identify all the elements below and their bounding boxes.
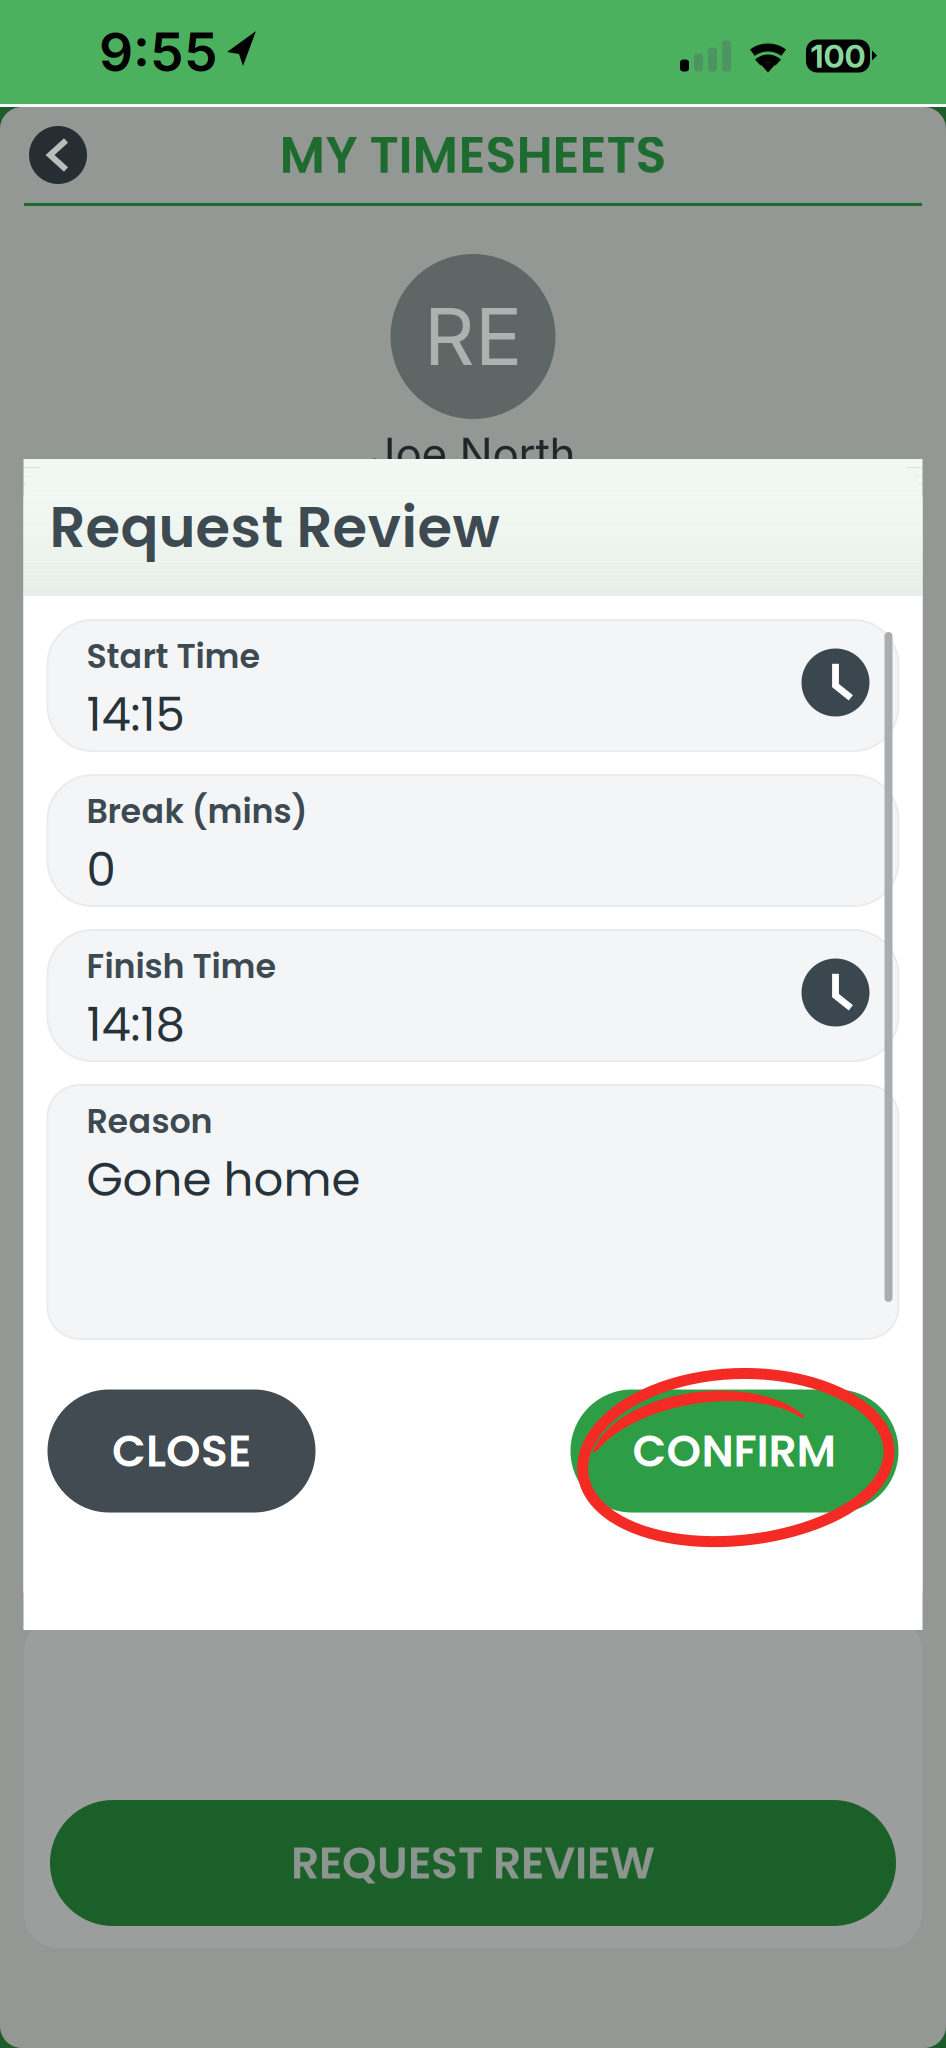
staticText: 0 [86,837,115,902]
button[interactable]: CONFIRM [570,1389,898,1512]
button[interactable]: Pick time [801,958,869,1026]
staticText: Gone home [86,1147,360,1212]
staticText: Finish Time [86,943,276,990]
staticText: Reason [86,1098,212,1145]
staticText: CONFIRM [632,1420,836,1482]
button[interactable]: Back [29,126,87,184]
button[interactable]: CLOSE [47,1389,315,1512]
staticText: CLOSE [112,1420,251,1482]
staticText: RE [424,289,522,384]
staticText: REQUEST REVIEW [291,1832,655,1894]
staticText: Request Review [49,488,499,567]
staticText: 14:15 [86,682,184,747]
staticText: 100 [810,37,865,75]
staticText: MY TIMESHEETS [279,119,666,190]
button[interactable]: REQUEST REVIEW [24,1800,922,1926]
staticText: Joe North [370,427,575,480]
staticText: 9:55 [99,20,218,84]
staticText: Break (mins) [86,788,307,835]
button[interactable]: Pick time [801,648,869,716]
staticText: Start Time [86,633,260,680]
staticText: 14:18 [86,992,184,1057]
